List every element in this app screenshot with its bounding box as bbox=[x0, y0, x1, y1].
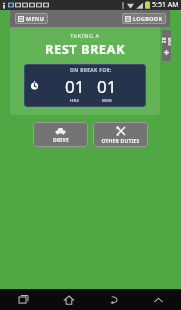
staticText: MORE bbox=[162, 37, 171, 46]
button[interactable]: DRIVE bbox=[33, 122, 88, 147]
staticText: LOGBOOK bbox=[133, 15, 163, 22]
button[interactable]: Home bbox=[46, 289, 91, 310]
staticText: ON BREAK FOR: bbox=[70, 67, 112, 74]
staticText: 01 bbox=[65, 75, 85, 98]
button[interactable]: More bbox=[162, 30, 171, 61]
staticText: DRIVE bbox=[53, 137, 69, 144]
button[interactable]: Show keyboard bbox=[136, 289, 181, 310]
button[interactable]: Back bbox=[91, 289, 136, 310]
staticText: HRS bbox=[70, 98, 80, 104]
staticText: REST BREAK bbox=[45, 40, 125, 58]
staticText: TAKING A bbox=[70, 32, 100, 39]
staticText: 01 bbox=[97, 75, 117, 98]
button[interactable]: LOGBOOK bbox=[122, 13, 166, 24]
button[interactable]: Recent apps bbox=[0, 289, 46, 310]
staticText: 5:51 AM bbox=[152, 0, 179, 10]
staticText: OTHER DUTIES bbox=[101, 138, 140, 144]
button[interactable]: MENU bbox=[15, 13, 48, 24]
staticText: MIN bbox=[102, 98, 112, 104]
button[interactable]: OTHER DUTIES bbox=[93, 122, 148, 147]
staticText: MENU bbox=[26, 15, 45, 22]
